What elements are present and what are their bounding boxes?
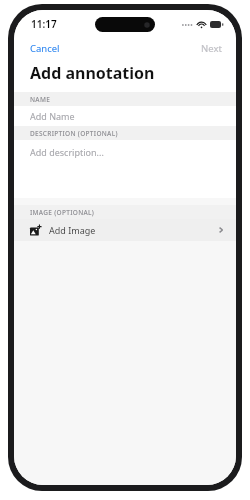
button[interactable]: Cancel [14, 39, 76, 58]
staticText: NAME [30, 95, 51, 104]
button[interactable]: Next [187, 39, 236, 58]
staticText: Add description... [30, 146, 104, 158]
staticText: Cancel [30, 42, 60, 55]
staticText: Add Name [30, 110, 75, 122]
staticText: Add annotation [30, 62, 155, 84]
other: Open [218, 225, 224, 235]
staticText: IMAGE (OPTIONAL) [30, 208, 95, 217]
other: Add Image [30, 225, 41, 236]
staticText: Add Image [49, 224, 96, 236]
staticText: 11:17 [31, 17, 57, 31]
staticText: DESCRIPTION (OPTIONAL) [30, 129, 118, 138]
button[interactable]: Add Image [14, 219, 236, 241]
button[interactable]: Add description... [14, 140, 236, 198]
staticText: Next [201, 42, 222, 55]
button[interactable]: Add Name [14, 106, 236, 126]
